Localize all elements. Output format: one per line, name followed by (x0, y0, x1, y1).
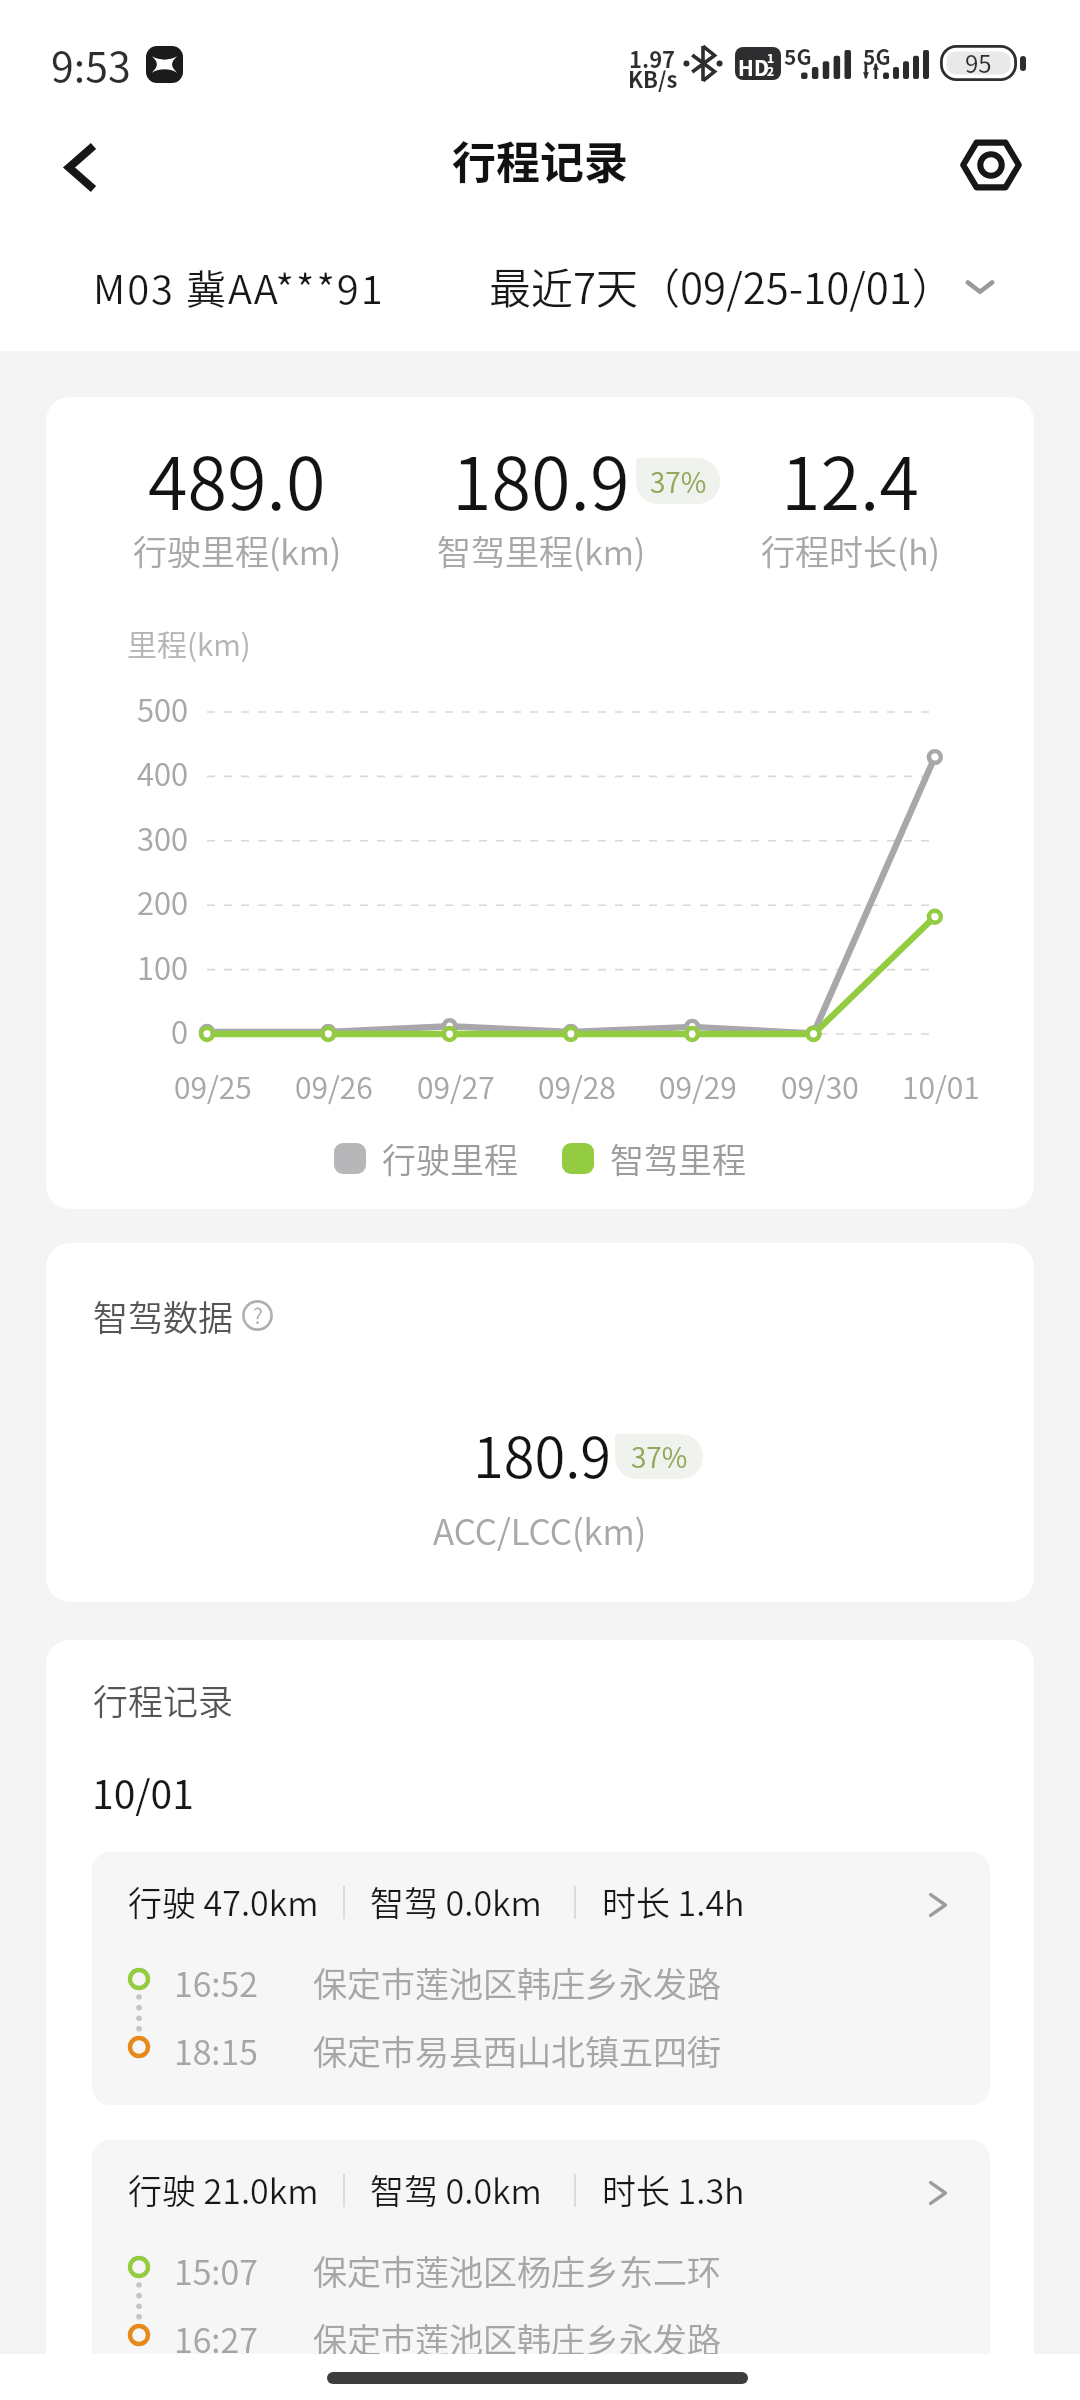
staticText: 行程记录 (93, 1674, 234, 1725)
staticText: 智驾里程 (610, 1134, 746, 1183)
staticText: 最近7天（09/25-10/01） (489, 255, 954, 316)
staticText: ACC/LCC(km) (433, 1504, 647, 1555)
staticText: 保定市莲池区韩庄乡永发路 (313, 2314, 721, 2363)
staticText: 12.4 (781, 426, 919, 530)
staticText: 行驶里程 (382, 1134, 518, 1183)
staticText: 时长 1.4h (602, 1877, 745, 1926)
staticText: 保定市莲池区杨庄乡东二环 (313, 2246, 721, 2295)
staticText: 智驾数据 (93, 1290, 234, 1341)
button[interactable]: M03 冀AA***91 (93, 258, 385, 316)
staticText: 智驾 0.0km (370, 1877, 542, 1926)
staticText: 09/27 (417, 1064, 495, 1107)
staticText: 5G (863, 41, 891, 71)
staticText: 10/01 (902, 1064, 980, 1107)
staticText: ? (253, 1300, 263, 1330)
staticText: HD (738, 52, 769, 80)
staticText: 09/28 (538, 1064, 616, 1107)
staticText: 37% (650, 461, 707, 502)
button[interactable]: 智驾数据 (93, 1290, 273, 1341)
staticText: 100 (137, 944, 189, 989)
staticText: 95 (965, 45, 992, 80)
button[interactable]: 行驶 47.0km (92, 1852, 990, 2105)
staticText: 180.9 (473, 1413, 612, 1494)
staticText: 1.97 (629, 42, 676, 74)
staticText: 400 (137, 750, 189, 795)
staticText: 10/01 (92, 1764, 194, 1820)
staticText: 200 (137, 879, 189, 924)
staticText: 09/30 (781, 1064, 859, 1107)
staticText: 智驾 0.0km (370, 2165, 542, 2214)
staticText: 489.0 (148, 426, 326, 530)
staticText: 0 (171, 1008, 189, 1053)
staticText: 180.9 (452, 426, 630, 530)
staticText: 里程(km) (127, 621, 251, 664)
staticText: 行驶里程(km) (133, 526, 342, 575)
staticText: 行驶 47.0km (128, 1877, 319, 1926)
staticText: 500 (137, 686, 189, 731)
staticText: 15:07 (174, 2246, 258, 2295)
staticText: 09/29 (659, 1064, 737, 1107)
staticText: 行程记录 (452, 128, 628, 192)
staticText: 37% (631, 1436, 688, 1477)
staticText: 09/25 (174, 1064, 252, 1107)
staticText: 16:27 (174, 2314, 258, 2363)
staticText: 行驶 21.0km (128, 2165, 319, 2214)
staticText: 5G (784, 41, 812, 71)
button[interactable]: Settings (955, 129, 1027, 201)
staticText: 时长 1.3h (602, 2165, 745, 2214)
staticText: 09/26 (295, 1064, 373, 1107)
staticText: 保定市莲池区韩庄乡永发路 (313, 1958, 721, 2007)
staticText: 9:53 (51, 34, 131, 93)
staticText: 智驾里程(km) (437, 526, 646, 575)
staticText: 2 (767, 62, 775, 79)
staticText: 行程时长(h) (761, 526, 940, 575)
staticText: 1 (767, 49, 775, 66)
staticText: 18:15 (174, 2026, 258, 2075)
button[interactable]: 最近7天（09/25-10/01） (489, 255, 998, 316)
staticText: 16:52 (174, 1958, 258, 2007)
staticText: KB/s (628, 62, 678, 94)
staticText: 保定市易县西山北镇五四街 (313, 2026, 721, 2075)
button[interactable]: 行驶 21.0km (92, 2140, 990, 2393)
button[interactable]: Back (36, 123, 98, 185)
staticText: 300 (137, 815, 189, 860)
